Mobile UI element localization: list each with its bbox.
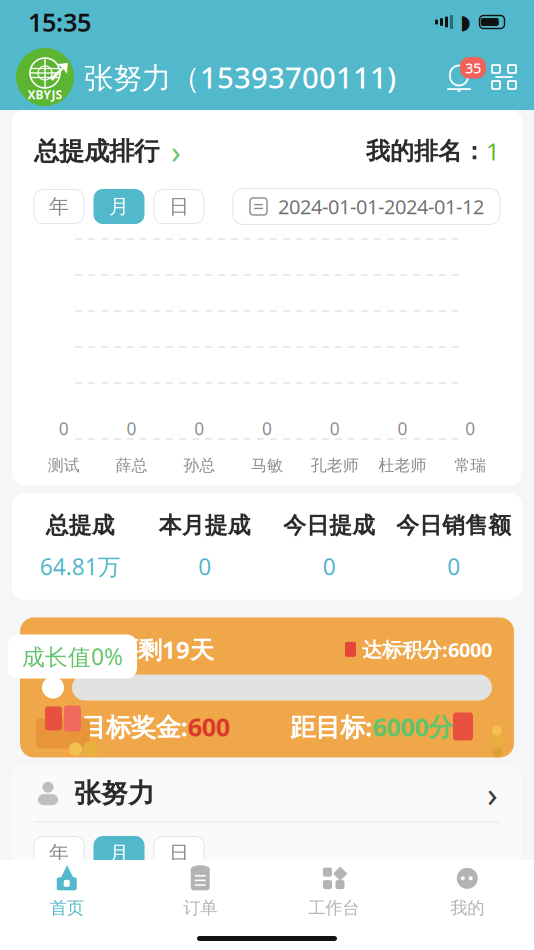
staticText: 6000分 [372, 710, 453, 743]
staticText: 年 [49, 841, 69, 866]
staticText: ➚ [46, 52, 73, 88]
button[interactable]: 日 [154, 836, 204, 870]
staticText: 测试 [48, 456, 80, 475]
button[interactable]: 月 [94, 836, 144, 870]
staticText: 距活动还剩19天 [42, 633, 214, 665]
button[interactable]: 我的 [400, 857, 534, 925]
button[interactable]: 年 [34, 836, 84, 870]
button[interactable]: 日 [154, 189, 204, 223]
button[interactable]: 2024-01-01-2024-01-12 [233, 188, 500, 224]
staticText: 日 [169, 194, 189, 219]
staticText: 1 [486, 135, 500, 167]
staticText: 0 [330, 417, 340, 440]
staticText: 0 [465, 417, 475, 440]
staticText: › [171, 130, 181, 172]
staticText: ◗ [460, 11, 471, 33]
staticText: 0 [447, 551, 460, 581]
staticText: ◆ [333, 861, 347, 883]
staticText: 距目标: [290, 710, 372, 743]
staticText: 35 [465, 58, 481, 77]
staticText: 0 [397, 417, 407, 440]
staticText: › [487, 770, 498, 816]
staticText: 总提成 [46, 511, 115, 539]
button[interactable]: ▲ [0, 857, 133, 925]
staticText: 目标奖金: [81, 710, 188, 743]
button[interactable]: 订单 [133, 857, 267, 925]
staticText: 64.81万 [40, 551, 121, 581]
staticText: XBYJS [27, 87, 62, 102]
staticText: 首页 [50, 897, 84, 919]
staticText: 我的排名： [366, 136, 486, 166]
staticText: 订单 [183, 897, 217, 919]
staticText: 总提成排行 [34, 136, 159, 167]
button[interactable]: 扫一扫 [486, 63, 518, 91]
button[interactable]: 通知 [432, 57, 486, 97]
staticText: 我的 [450, 897, 484, 919]
staticText: 15:35 [28, 5, 91, 39]
staticText: 本月提成 [159, 511, 251, 539]
staticText: 杜老师 [378, 456, 426, 475]
staticText: 0 [59, 417, 69, 440]
button[interactable]: 距活动还剩19天 [0, 599, 534, 757]
staticText: 0 [262, 417, 272, 440]
button[interactable]: 年 [34, 189, 84, 223]
staticText: 工作台 [308, 897, 359, 919]
staticText: 孔老师 [311, 456, 359, 475]
staticText: 张努力 [74, 777, 155, 810]
button[interactable]: 总提成排行 [34, 130, 181, 172]
staticText: 2024-01-01-2024-01-12 [278, 193, 484, 220]
staticText: 0 [127, 417, 137, 440]
staticText: 成长值0% [22, 641, 123, 671]
staticText: 日 [169, 841, 189, 866]
staticText: 今日提成 [283, 511, 375, 539]
staticText: 0 [198, 551, 211, 581]
button[interactable]: ◆ [267, 857, 400, 925]
staticText: 月 [109, 194, 129, 219]
staticText: 孙总 [183, 456, 215, 475]
staticText: 马敏 [251, 456, 283, 475]
staticText: 0 [194, 417, 204, 440]
staticText: 张努力（15393700111) [84, 57, 396, 96]
staticText: ▲ [58, 859, 75, 885]
staticText: 0 [323, 551, 336, 581]
staticText: 600 [188, 710, 230, 743]
staticText: 薛总 [116, 456, 148, 475]
staticText: 月 [109, 841, 129, 866]
staticText: 常瑞 [454, 456, 486, 475]
staticText: 今日销售额 [396, 511, 511, 539]
staticText: 年 [49, 194, 69, 219]
staticText: 达标积分:6000 [362, 636, 492, 663]
button[interactable]: 张努力 [12, 765, 522, 821]
button[interactable]: 月 [94, 189, 144, 223]
